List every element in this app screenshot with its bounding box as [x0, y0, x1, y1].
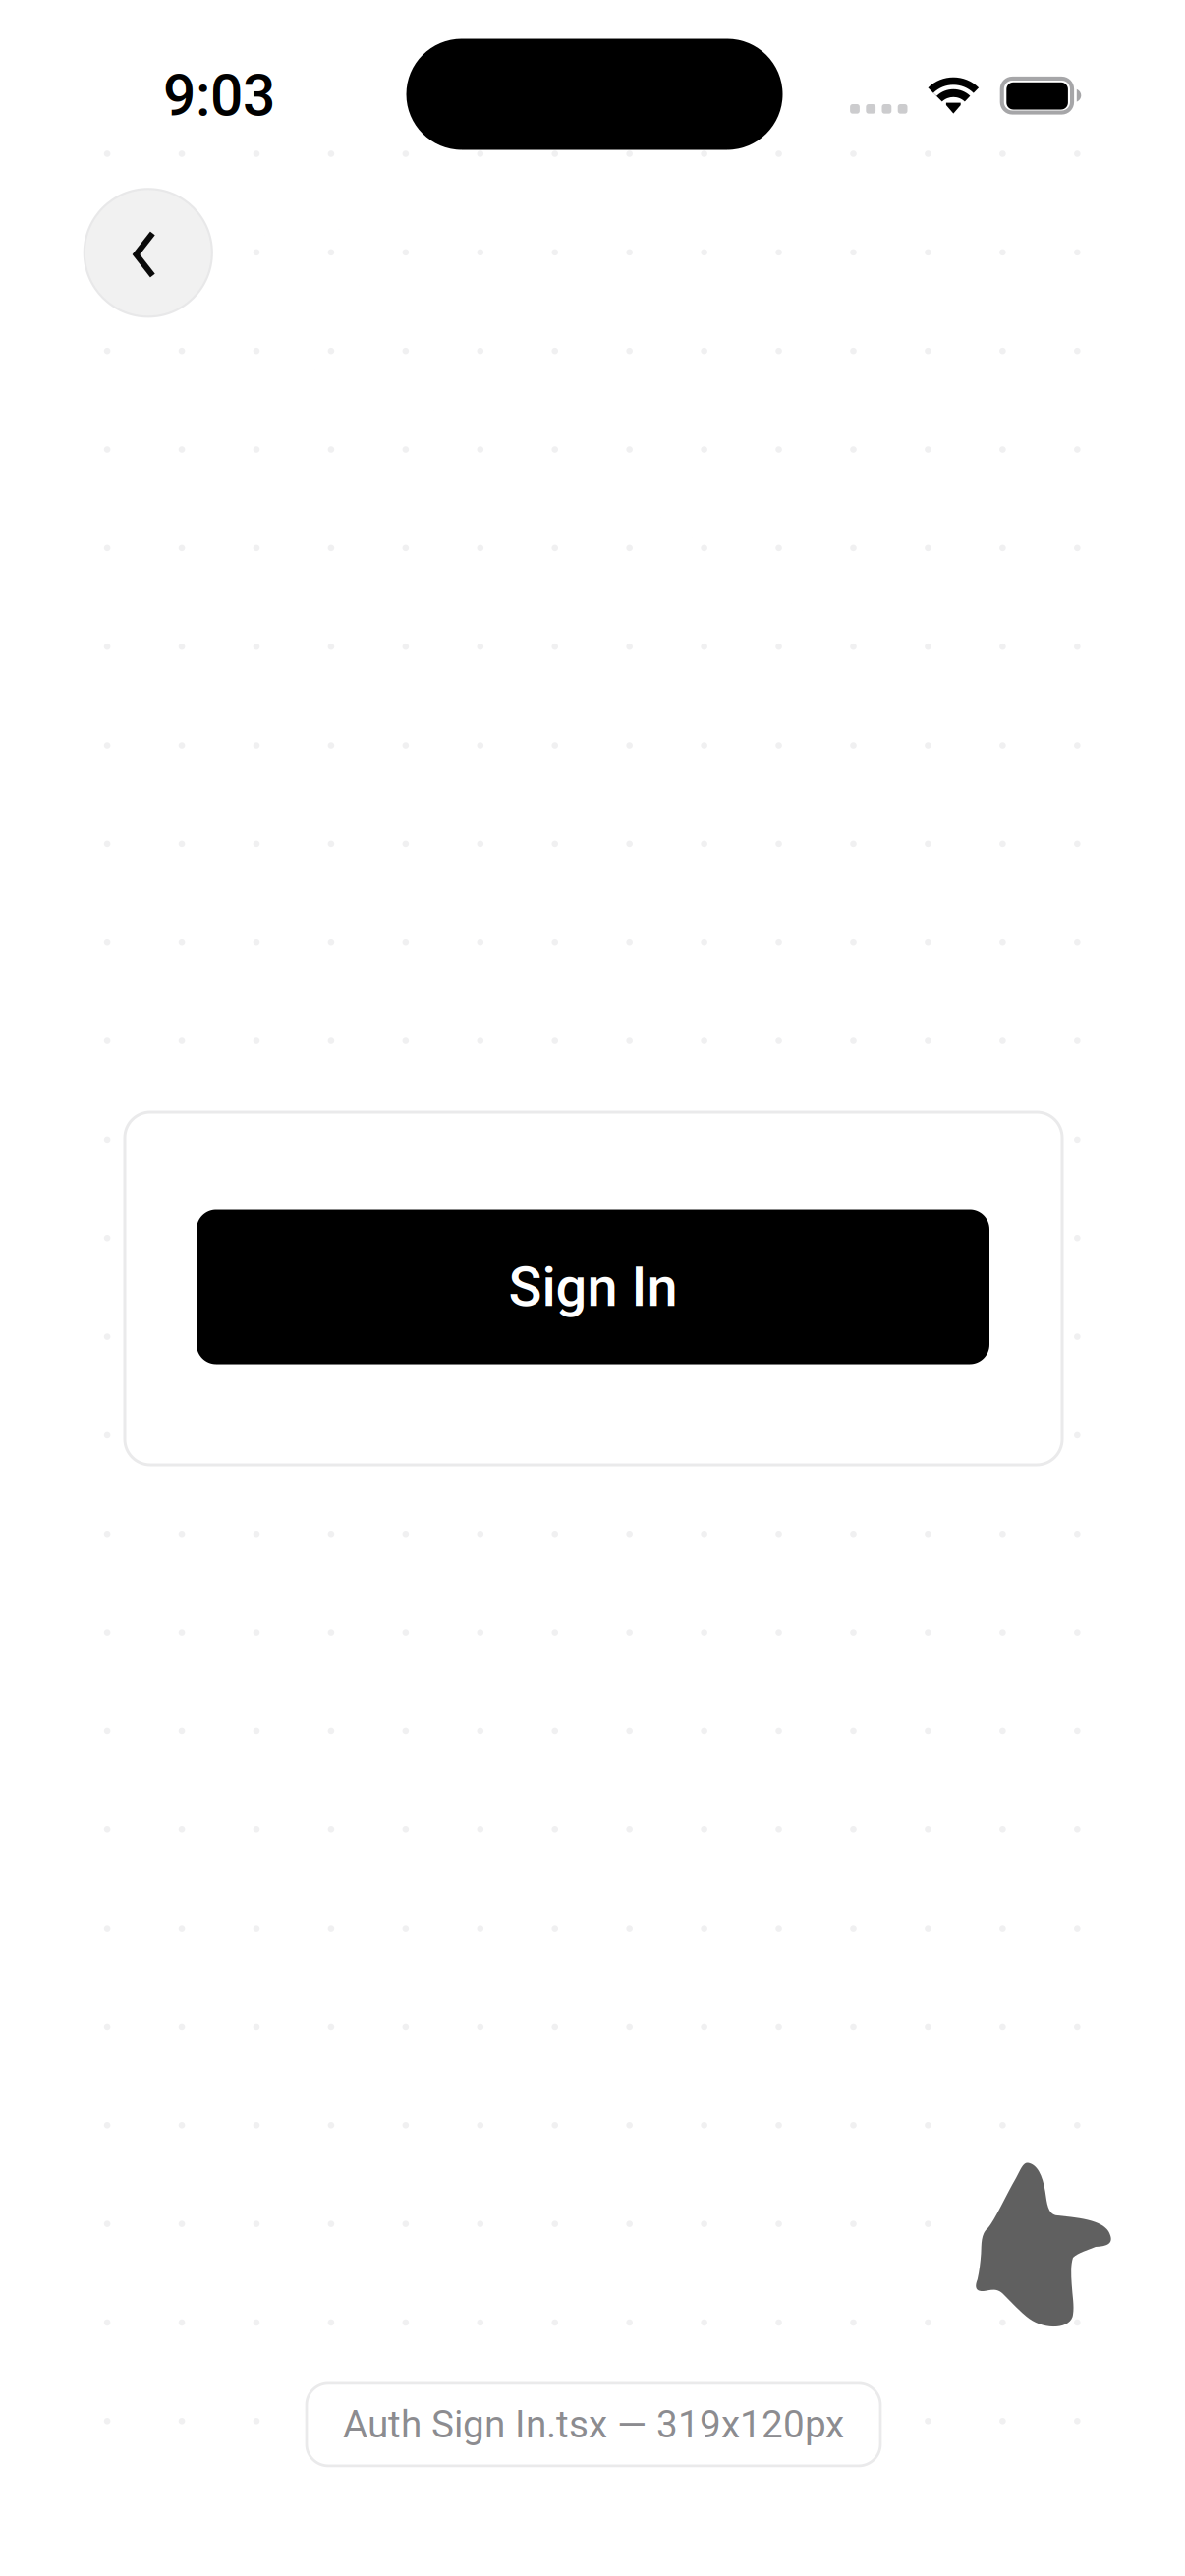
staticText: 9:03: [163, 62, 275, 130]
staticText: Sign In: [508, 1255, 677, 1319]
button[interactable]: Sign In: [197, 1211, 990, 1366]
button[interactable]: Back: [84, 189, 212, 317]
staticText: Auth Sign In.tsx — 319x120px: [343, 2402, 844, 2447]
